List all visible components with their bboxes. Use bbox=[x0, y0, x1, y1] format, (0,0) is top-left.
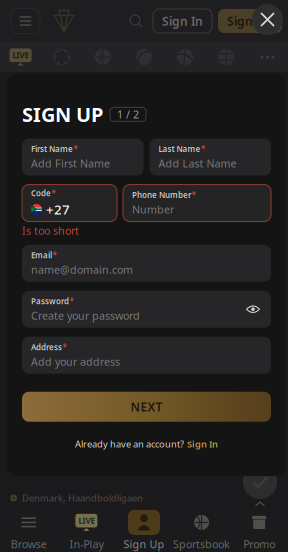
button[interactable]: Basketball bbox=[82, 49, 123, 65]
staticText: +27 bbox=[46, 200, 70, 218]
button[interactable]: Sign Up bbox=[218, 9, 282, 33]
staticText: Is too short bbox=[22, 224, 79, 238]
staticText: Last Name bbox=[158, 144, 200, 154]
staticText: name@domain.com bbox=[31, 262, 133, 277]
staticText: * bbox=[201, 144, 205, 154]
staticText: Denmark, Haandboldligaen bbox=[22, 492, 143, 504]
button[interactable]: Home bbox=[48, 7, 80, 35]
staticText: 1 / 2 bbox=[117, 107, 139, 121]
staticText: Sign In bbox=[162, 13, 203, 29]
button[interactable]: NEXT bbox=[22, 392, 271, 422]
button[interactable]: Menu bbox=[11, 8, 40, 33]
staticText: Sign Up bbox=[123, 537, 164, 551]
button[interactable]: Search bbox=[121, 9, 151, 33]
staticText: Add First Name bbox=[31, 156, 110, 170]
staticText: LIVE bbox=[13, 50, 29, 60]
staticText: * bbox=[69, 296, 73, 306]
button[interactable]: Show password bbox=[241, 298, 265, 320]
staticText: Create your password bbox=[31, 308, 140, 323]
staticText: In-Play bbox=[69, 537, 103, 551]
button[interactable]: Sign In bbox=[187, 438, 218, 450]
staticText: First Name bbox=[31, 144, 73, 154]
button[interactable]: Browse bbox=[0, 505, 58, 552]
button[interactable]: Sportsbook bbox=[173, 505, 230, 552]
staticText: Sportsbook bbox=[173, 537, 230, 551]
staticText: SIGN UP bbox=[22, 101, 103, 128]
staticText: * bbox=[73, 144, 77, 154]
staticText: Number bbox=[132, 202, 174, 216]
staticText: * bbox=[51, 188, 55, 198]
staticText: Browse bbox=[11, 537, 47, 551]
staticText: Add your address bbox=[31, 354, 120, 369]
button[interactable]: Promo bbox=[230, 505, 288, 552]
staticText: Add Last Name bbox=[158, 156, 236, 170]
staticText: Code bbox=[31, 188, 51, 198]
button[interactable]: Tennis bbox=[123, 49, 164, 65]
button[interactable]: Soccer bbox=[41, 49, 82, 65]
staticText: * bbox=[62, 342, 66, 352]
staticText: LIVE bbox=[78, 515, 94, 526]
staticText: Sign Up bbox=[227, 13, 273, 29]
staticText: Address bbox=[31, 342, 62, 352]
staticText: Email bbox=[31, 250, 52, 260]
staticText: Already have an account? bbox=[75, 438, 184, 450]
button[interactable]: More sports bbox=[247, 55, 288, 58]
staticText: Phone Number bbox=[132, 190, 191, 200]
staticText: Promo bbox=[243, 537, 275, 551]
staticText: * bbox=[52, 250, 56, 260]
staticText: Sign In bbox=[187, 438, 218, 450]
button[interactable]: Close bbox=[252, 4, 283, 35]
button[interactable]: Sign Up bbox=[115, 505, 173, 552]
button[interactable]: Volleyball bbox=[165, 49, 206, 65]
staticText: * bbox=[191, 190, 195, 200]
button[interactable]: LIVE bbox=[58, 505, 115, 552]
staticText: Password bbox=[31, 296, 69, 306]
button[interactable]: Sign In bbox=[153, 9, 212, 33]
button[interactable]: Live bbox=[0, 48, 41, 65]
staticText: NEXT bbox=[130, 399, 162, 415]
button[interactable]: Golf bbox=[206, 49, 247, 65]
